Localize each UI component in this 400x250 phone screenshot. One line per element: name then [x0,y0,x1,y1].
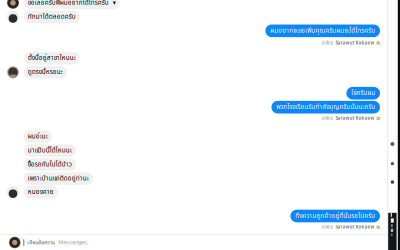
button[interactable]: ตั้งนี้อยู่สาขาไหนนะ [24,52,80,64]
staticText: ถึงความลูกค้าอยู่ที่นั่นรอไปครับ [295,211,375,221]
button[interactable]: ผมอยากจะขอเพิ่มคุณครับผมจะได้โทรครับ [265,24,380,37]
staticText: Messenger... [58,238,88,247]
button[interactable]: ขอเลยครับพี่ผมอยากได้โทรครับ ▾ [24,0,120,9]
button[interactable]: หนองคาย [24,186,58,198]
staticText: เพราะบ้านแค่ติดอยู่ท่านะ [28,174,89,183]
button[interactable]: เพราะบ้านแค่ติดอยู่ท่านะ [24,172,93,185]
button[interactable]: พวกโรงเรียนรับกำลังบุญครับนั่นนะครับ [271,101,380,113]
button[interactable]: ดูตรงนี้หรอนะ [24,66,67,78]
staticText: ขอเลยครับพี่ผมอยากได้โทรครับ ▾ [28,0,116,8]
button[interactable]: มาแป๊บนี้ได้ไหมนะ [24,144,76,157]
staticText: Sarawut Kokaew [335,224,374,231]
staticText: หนองคาย [28,187,54,197]
button[interactable]: ถึงความลูกค้าอยู่ที่นั่นรอไปครับ [290,210,380,222]
staticText: ซื้อรถกับไปได้ป่าว [28,160,72,169]
button[interactable]: เขียนข้อความ [0,235,387,250]
staticText: ส่งโดย [321,40,333,46]
staticText: ใช่ครับผม [351,88,375,98]
staticText: พวกโรงเรียนรับกำลังบุญครับนั่นนะครับ [276,102,375,112]
staticText: ผมอ่ะนะ [28,132,48,141]
staticText: Sarawut Kokaew [335,40,374,46]
staticText: ดูตรงนี้หรอนะ [28,67,63,77]
staticText: Sarawut Kokaew [335,115,374,122]
staticText: ส่งโดย [321,115,333,122]
button[interactable]: ซื้อรถกับไปได้ป่าว [24,158,76,171]
staticText: ตั้งนี้อยู่สาขาไหนนะ [28,53,76,63]
staticText: เขียนข้อความ [27,238,55,247]
staticText: ผมอยากจะขอเพิ่มคุณครับผมจะได้โทรครับ [270,26,375,36]
button[interactable]: ผมอ่ะนะ [24,130,52,143]
staticText: ทักมาได้ตลอดครับ [28,12,76,22]
button[interactable]: ใช่ครับผม [346,87,380,99]
staticText: มาแป๊บนี้ได้ไหมนะ [28,146,72,155]
button[interactable]: ทักมาได้ตลอดครับ [24,10,80,23]
staticText: ส่งโดย [321,224,333,231]
